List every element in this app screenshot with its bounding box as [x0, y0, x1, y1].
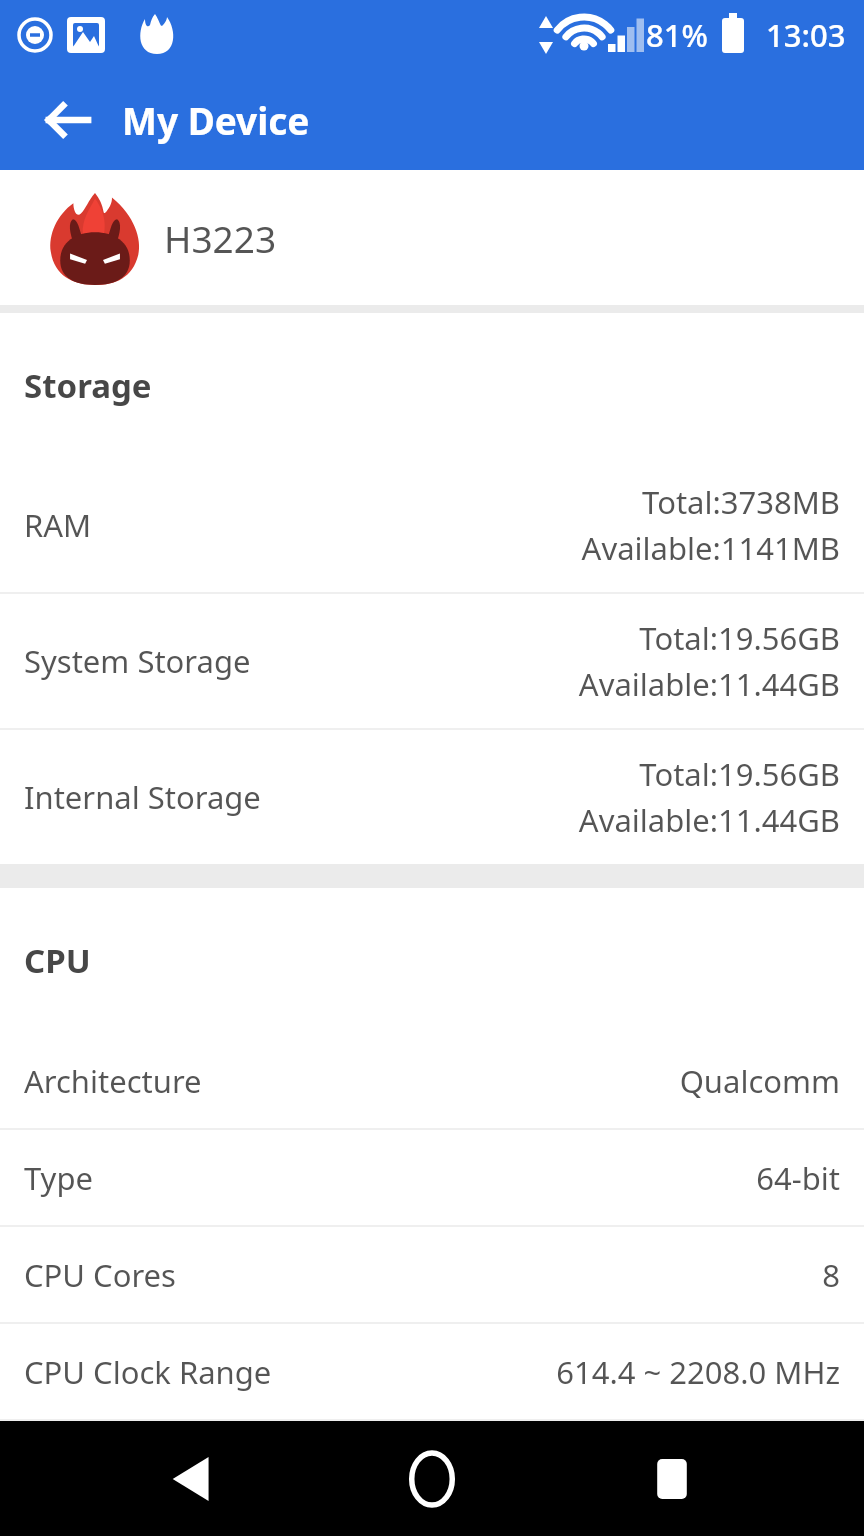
button[interactable]: CPU Clock Range — [0, 1324, 864, 1419]
button[interactable]: Architecture — [0, 1033, 864, 1128]
staticText: H3223 — [164, 213, 277, 263]
button[interactable]: RAM — [0, 458, 864, 592]
staticText: 614.4 ~ 2208.0 MHz — [556, 1351, 840, 1393]
button[interactable]: H3223 — [0, 170, 864, 305]
button[interactable]: Back — [132, 1421, 252, 1536]
staticText: Available:1141MB — [581, 527, 840, 569]
staticText: My Device — [122, 95, 310, 145]
button[interactable]: Home — [372, 1421, 492, 1536]
staticText: 13:03 — [766, 14, 846, 56]
staticText: Total:19.56GB — [639, 753, 840, 795]
button[interactable]: Back — [24, 76, 112, 164]
staticText: RAM — [24, 504, 92, 546]
button[interactable]: Recent apps — [612, 1421, 732, 1536]
staticText: 64-bit — [756, 1157, 840, 1199]
staticText: Total:3738MB — [642, 481, 840, 523]
button[interactable]: Type — [0, 1130, 864, 1225]
staticText: CPU Cores — [24, 1254, 176, 1296]
staticText: Available:11.44GB — [578, 799, 840, 841]
staticText: Available:11.44GB — [578, 663, 840, 705]
staticText: Type — [24, 1157, 93, 1199]
staticText: System Storage — [24, 640, 251, 682]
staticText: Storage — [24, 363, 152, 408]
staticText: 81% — [646, 14, 708, 56]
staticText: CPU Clock Range — [24, 1351, 272, 1393]
button[interactable]: System Storage — [0, 594, 864, 728]
staticText: CPU — [24, 938, 91, 983]
button[interactable]: CPU Cores — [0, 1227, 864, 1322]
staticText: Qualcomm — [679, 1060, 840, 1102]
button[interactable]: Internal Storage — [0, 730, 864, 864]
staticText: Architecture — [24, 1060, 202, 1102]
staticText: Internal Storage — [24, 776, 261, 818]
staticText: Total:19.56GB — [639, 617, 840, 659]
staticText: 8 — [822, 1254, 840, 1296]
